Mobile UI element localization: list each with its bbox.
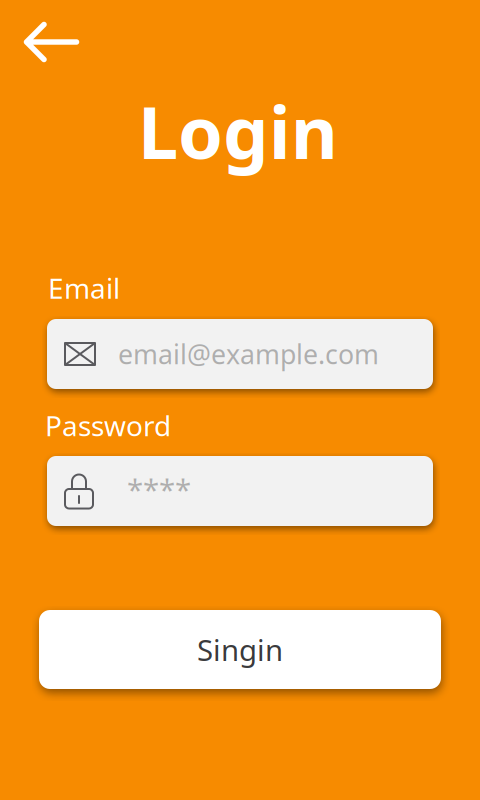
staticText: Email — [48, 269, 120, 307]
staticText: email@example.com — [118, 336, 379, 372]
button[interactable]: Back — [9, 9, 93, 74]
staticText: Password — [45, 407, 171, 444]
staticText: Singin — [197, 630, 283, 669]
button[interactable]: email@example.com — [47, 319, 433, 389]
button[interactable]: Singin — [39, 610, 441, 689]
button[interactable]: **** — [47, 456, 433, 526]
staticText: Login — [138, 83, 338, 179]
staticText: **** — [127, 469, 191, 508]
